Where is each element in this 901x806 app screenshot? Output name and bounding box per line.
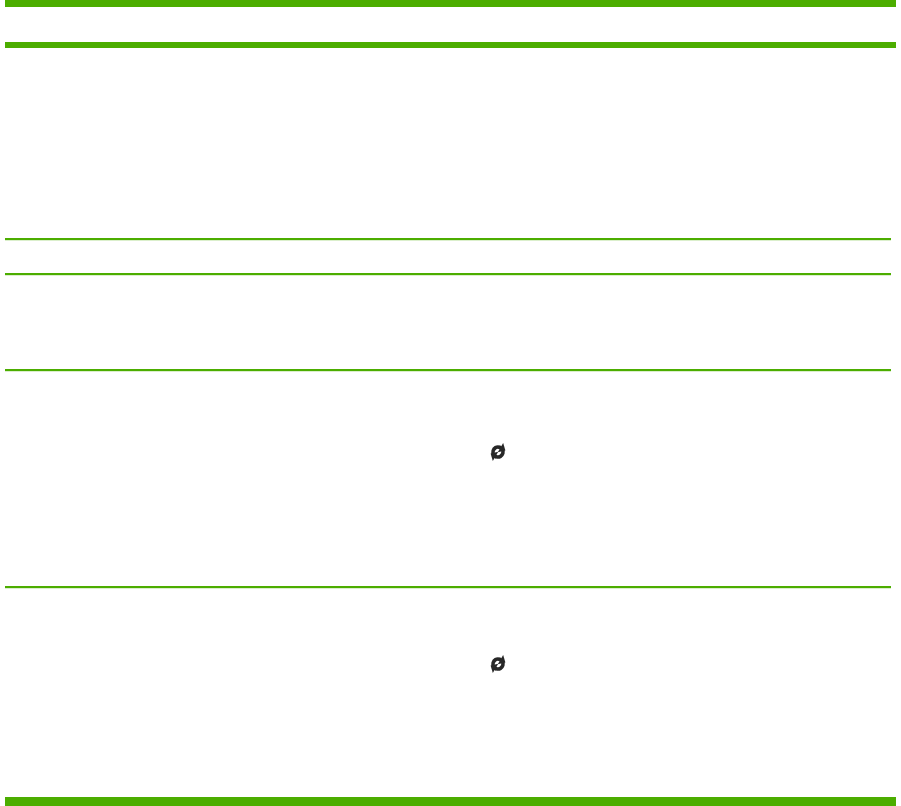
button[interactable]: Sync (482, 436, 514, 468)
button[interactable]: Sync (482, 648, 514, 680)
